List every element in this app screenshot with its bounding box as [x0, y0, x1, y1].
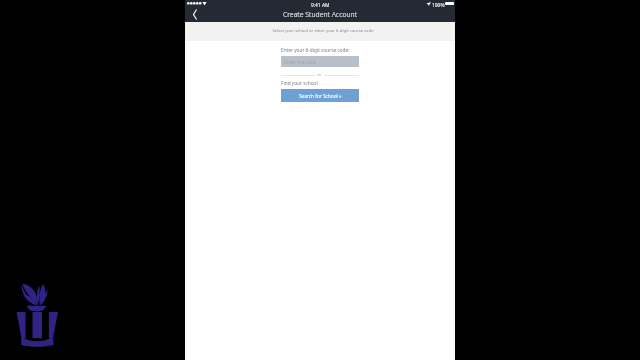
- staticText: Find your school: [281, 80, 318, 86]
- staticText: Select your school or enter your 6-digit…: [272, 28, 374, 34]
- staticText: Search for School »: [299, 93, 342, 99]
- button[interactable]: Back: [185, 8, 204, 21]
- staticText: 100%: [432, 2, 445, 9]
- staticText: or: [317, 72, 322, 78]
- button[interactable]: Enter the code: [281, 56, 359, 67]
- staticText: 9:41 AM: [311, 2, 330, 9]
- staticText: Create Student Account: [283, 10, 358, 19]
- staticText: Enter the code: [284, 59, 317, 65]
- staticText: Enter your 6-digit course code:: [281, 47, 350, 53]
- button[interactable]: Search for School »: [281, 89, 359, 102]
